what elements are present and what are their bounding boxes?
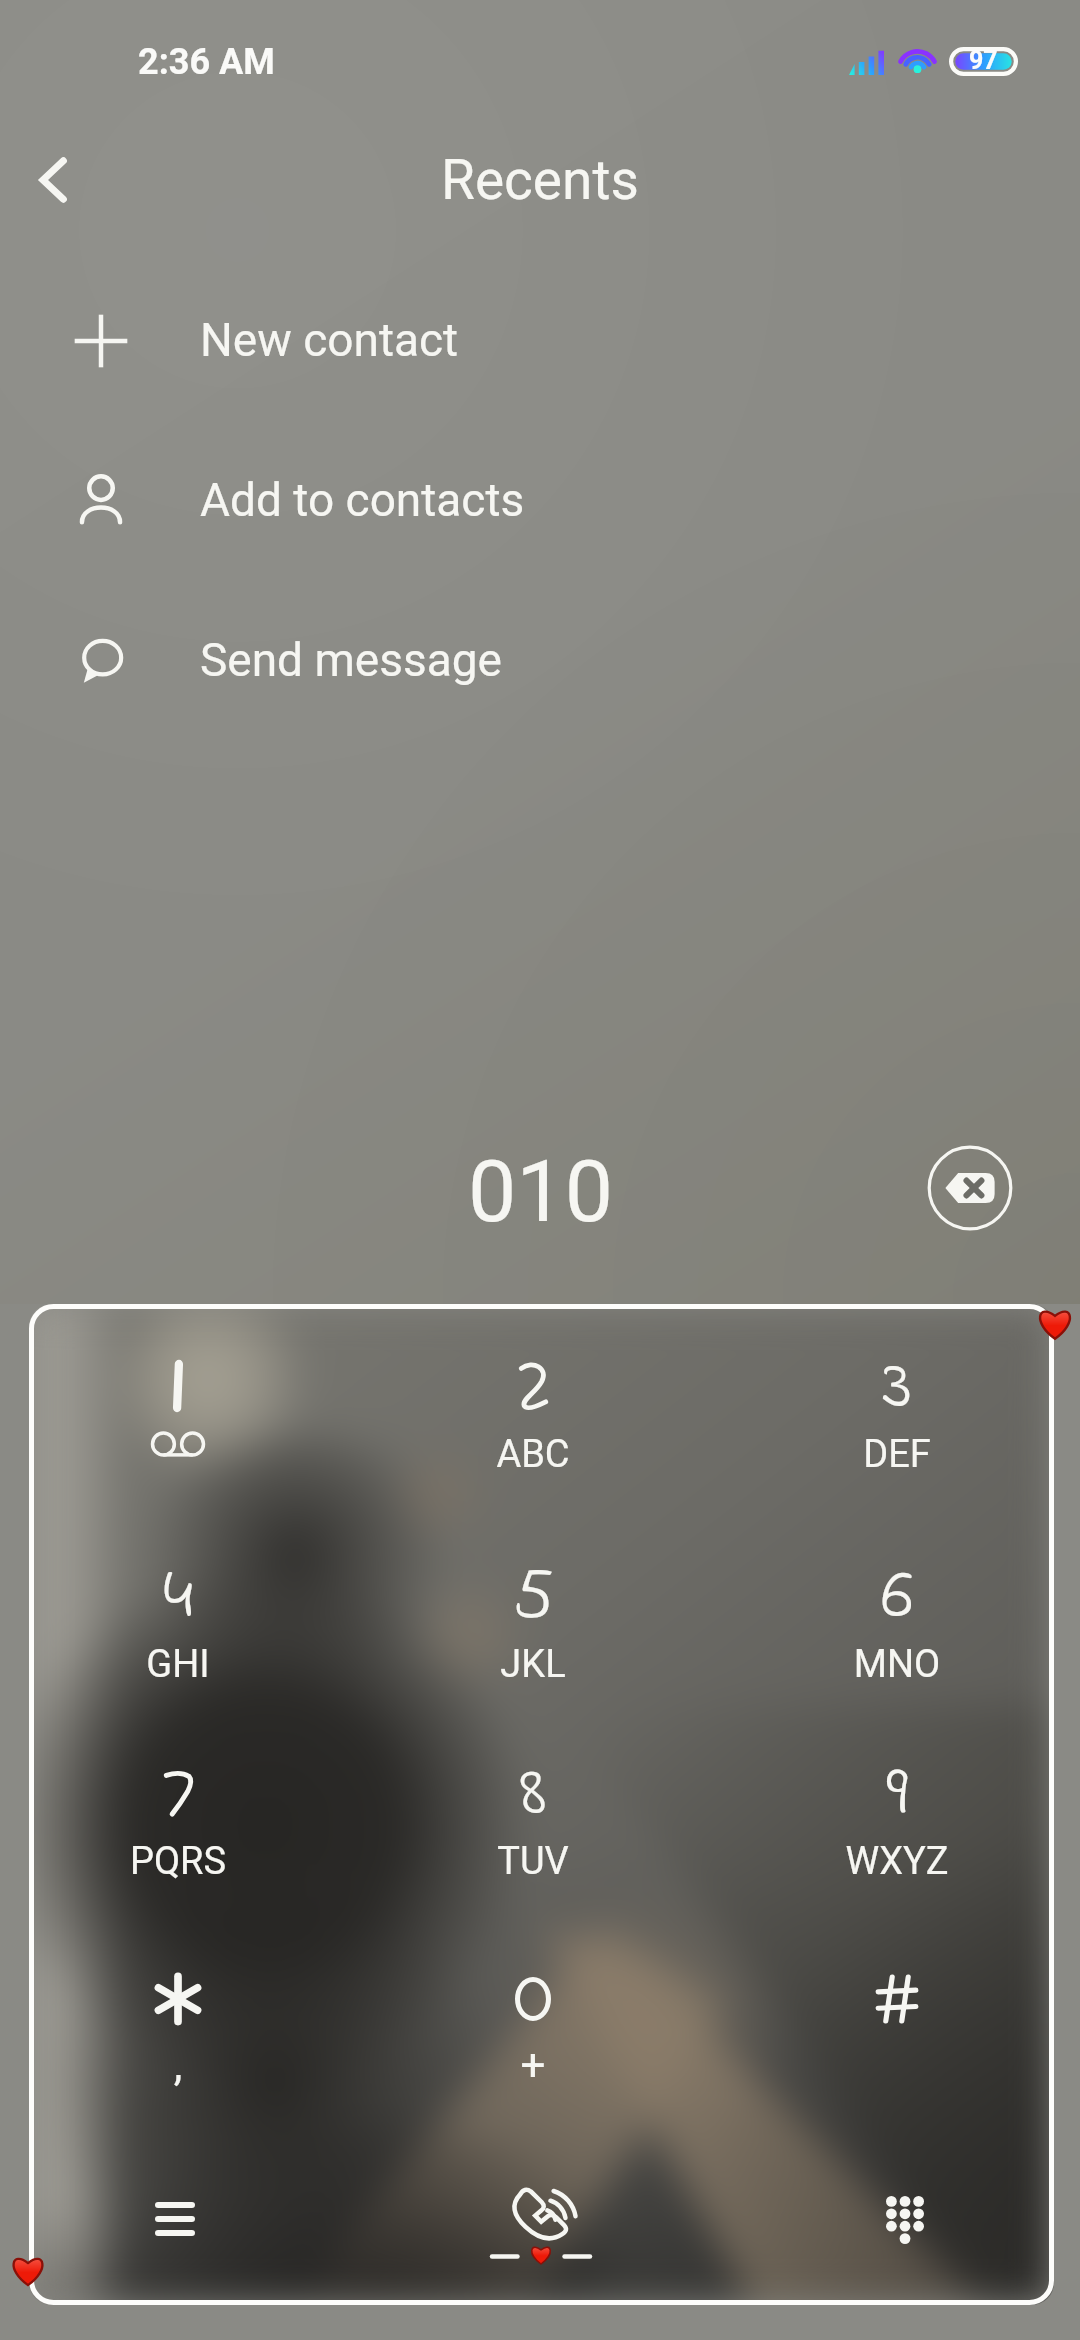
button[interactable]: Keypad <box>850 2170 960 2270</box>
button[interactable]: Call log <box>115 2169 235 2269</box>
staticText: PQRS <box>108 1839 248 1884</box>
button[interactable] <box>28 1291 328 1491</box>
button[interactable] <box>747 1501 1047 1701</box>
button[interactable] <box>747 1698 1047 1898</box>
button[interactable]: Call <box>470 2160 610 2290</box>
button[interactable]: Send message <box>0 589 1080 733</box>
staticText: 010 <box>468 1141 613 1242</box>
button[interactable] <box>383 1698 683 1898</box>
staticText: + <box>463 2039 603 2091</box>
staticText: 97 <box>969 46 998 75</box>
button[interactable] <box>28 1501 328 1701</box>
button[interactable] <box>747 1904 1047 2104</box>
staticText: WXYZ <box>827 1839 967 1884</box>
staticText: 3 <box>837 1336 957 1441</box>
staticText: MNO <box>827 1642 967 1687</box>
staticText: 5 <box>473 1546 593 1651</box>
staticText: 2:36 AM <box>138 41 275 83</box>
staticText: New contact <box>200 313 459 367</box>
button[interactable]: Back <box>25 148 85 212</box>
button[interactable]: Add to contacts <box>0 429 1080 573</box>
staticText: , <box>108 2039 248 2091</box>
button[interactable] <box>383 1291 683 1491</box>
staticText: 6 <box>837 1546 957 1651</box>
staticText: Send message <box>200 633 502 687</box>
staticText: Recents <box>441 148 639 212</box>
button[interactable]: Backspace <box>926 1144 1014 1232</box>
staticText: 4 <box>118 1546 238 1651</box>
staticText: GHI <box>108 1642 248 1687</box>
staticText: DEF <box>827 1432 967 1477</box>
staticText: 9 <box>837 1743 957 1848</box>
staticText: ABC <box>463 1432 603 1477</box>
button[interactable] <box>28 1698 328 1898</box>
staticText: 8 <box>473 1743 593 1848</box>
button[interactable] <box>747 1291 1047 1491</box>
button[interactable] <box>383 1501 683 1701</box>
button[interactable] <box>383 1904 683 2104</box>
staticText: JKL <box>463 1642 603 1687</box>
button[interactable]: New contact <box>0 269 1080 413</box>
button[interactable] <box>28 1904 328 2104</box>
staticText: TUV <box>463 1839 603 1884</box>
staticText: Add to contacts <box>200 473 525 527</box>
